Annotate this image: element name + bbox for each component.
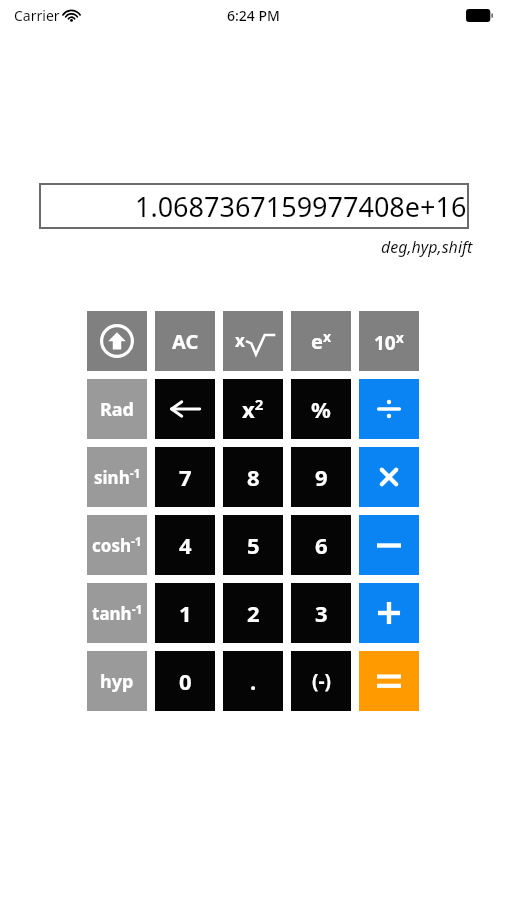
staticText: 1.0687367159977408e+16 bbox=[135, 188, 467, 225]
button[interactable]: Equals bbox=[359, 651, 419, 711]
button[interactable]: tanh-1 bbox=[87, 583, 147, 643]
staticText: tanh-1 bbox=[92, 601, 143, 625]
button[interactable]: hyp bbox=[87, 651, 147, 711]
button[interactable]: % bbox=[291, 379, 351, 439]
button[interactable]: AC bbox=[155, 311, 215, 371]
button[interactable]: 4 bbox=[155, 515, 215, 575]
staticText: hyp bbox=[100, 669, 134, 694]
staticText: . bbox=[250, 666, 257, 696]
staticText: 4 bbox=[179, 530, 192, 560]
button[interactable]: cosh-1 bbox=[87, 515, 147, 575]
staticText: x2 bbox=[242, 394, 264, 424]
staticText: Carrier bbox=[14, 6, 60, 25]
button[interactable]: 5 bbox=[223, 515, 283, 575]
staticText: 6:24 PM bbox=[227, 6, 280, 25]
staticText: Rad bbox=[100, 397, 134, 422]
button[interactable]: Minus bbox=[359, 515, 419, 575]
staticText: (-) bbox=[312, 668, 331, 694]
button[interactable]: Shift bbox=[87, 311, 147, 371]
button[interactable]: Divide bbox=[359, 379, 419, 439]
button[interactable]: Backspace bbox=[155, 379, 215, 439]
staticText: sinh-1 bbox=[94, 465, 141, 489]
staticText: 3 bbox=[315, 598, 328, 628]
staticText: x bbox=[235, 329, 245, 352]
button[interactable]: sinh-1 bbox=[87, 447, 147, 507]
button[interactable]: 9 bbox=[291, 447, 351, 507]
button[interactable]: 2 bbox=[223, 583, 283, 643]
staticText: 0 bbox=[179, 666, 192, 696]
button[interactable]: (-) bbox=[291, 651, 351, 711]
staticText: 1 bbox=[179, 598, 192, 628]
staticText: 7 bbox=[179, 462, 192, 492]
staticText: 6 bbox=[315, 530, 328, 560]
button[interactable]: Plus bbox=[359, 583, 419, 643]
button[interactable]: 8 bbox=[223, 447, 283, 507]
staticText: cosh-1 bbox=[92, 533, 142, 557]
button[interactable]: 0 bbox=[155, 651, 215, 711]
staticText: 5 bbox=[247, 530, 260, 560]
staticText: 10x bbox=[374, 328, 404, 355]
button[interactable]: 7 bbox=[155, 447, 215, 507]
button[interactable]: ex bbox=[291, 311, 351, 371]
button[interactable]: Multiply bbox=[359, 447, 419, 507]
button[interactable]: 3 bbox=[291, 583, 351, 643]
staticText: 9 bbox=[315, 462, 328, 492]
staticText: AC bbox=[172, 328, 199, 355]
button[interactable]: 1 bbox=[155, 583, 215, 643]
staticText: % bbox=[311, 394, 331, 424]
button[interactable]: x2 bbox=[223, 379, 283, 439]
button[interactable]: 6 bbox=[291, 515, 351, 575]
staticText: ex bbox=[311, 327, 332, 355]
staticText: 2 bbox=[247, 598, 260, 628]
button[interactable]: 10x bbox=[359, 311, 419, 371]
button[interactable]: x-th root bbox=[223, 311, 283, 371]
button[interactable]: Rad bbox=[87, 379, 147, 439]
staticText: deg,hyp,shift bbox=[381, 236, 473, 258]
staticText: 8 bbox=[247, 462, 260, 492]
button[interactable]: . bbox=[223, 651, 283, 711]
